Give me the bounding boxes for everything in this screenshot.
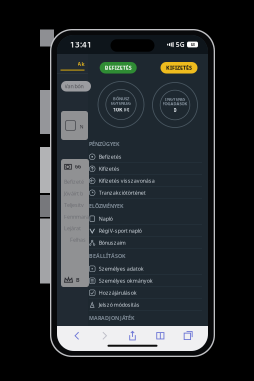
button[interactable]: BEFIZETÉS xyxy=(100,62,137,73)
button[interactable]: Jelszó módosítás xyxy=(89,299,202,311)
button[interactable]: Hozzájárulások xyxy=(89,287,202,299)
staticText: KIFIZETÉS xyxy=(166,64,192,71)
staticText: Fennmara xyxy=(64,213,89,220)
staticText: B xyxy=(76,276,80,284)
staticText: Tranzakciótörténet xyxy=(99,189,146,196)
staticText: Befizeté xyxy=(64,178,84,185)
staticText: ELŐZMÉNYEK xyxy=(89,202,123,210)
staticText: PÉNZÜGYEK xyxy=(89,140,119,148)
button[interactable]: Bónuszaim xyxy=(89,237,202,249)
staticText: Jóváírt b xyxy=(64,190,83,197)
staticText: 0 xyxy=(173,106,176,114)
staticText: Jelszó módosítás xyxy=(99,301,140,308)
staticText: 10K Ft xyxy=(113,106,129,113)
staticText: 5G xyxy=(176,40,185,49)
staticText: Ak xyxy=(78,60,85,68)
staticText: Felhas xyxy=(70,236,86,243)
staticText: BÓNUSZ xyxy=(113,96,129,101)
button[interactable]: Személyes okmányok xyxy=(89,275,202,287)
staticText: Lejárat xyxy=(64,225,81,232)
staticText: MARADJON JÁTÉK xyxy=(89,314,134,322)
button[interactable]: Back xyxy=(69,328,85,344)
button[interactable]: Forward xyxy=(97,328,113,344)
button[interactable]: Régi V-sport napló xyxy=(89,225,202,237)
staticText: FOGADÁSOK xyxy=(162,101,187,106)
staticText: Befizetés xyxy=(99,153,122,160)
staticText: Régi V-sport napló xyxy=(99,227,142,234)
button[interactable]: Befizetés xyxy=(89,151,202,163)
button[interactable]: Kifizetés xyxy=(89,163,202,175)
staticText: Személyes adatok xyxy=(99,265,144,272)
button[interactable]: Személyes adatok xyxy=(89,263,202,275)
staticText: BEFIZETÉS xyxy=(105,64,132,71)
button[interactable]: Tranzakciótörténet xyxy=(89,187,202,199)
button[interactable]: Kifizetés visszavonása xyxy=(89,175,202,187)
staticText: Hozzájárulások xyxy=(99,289,137,296)
staticText: Kifizetés visszavonása xyxy=(99,177,155,184)
staticText: EGYENLEG xyxy=(111,100,131,106)
staticText: Személyes okmányok xyxy=(99,277,153,284)
staticText: 63 xyxy=(190,42,194,47)
staticText: 13:41 xyxy=(70,39,92,50)
button[interactable]: Napló xyxy=(89,213,202,225)
staticText: N xyxy=(79,123,83,130)
staticText: BEÁLLÍTÁSOK xyxy=(89,252,125,260)
staticText: Teljesítv xyxy=(64,201,84,209)
button[interactable]: Bookmarks xyxy=(152,328,168,344)
staticText: INGYENES xyxy=(165,96,185,102)
button[interactable]: Tabs xyxy=(180,328,196,344)
staticText: Bónuszaim xyxy=(99,239,126,246)
staticText: Van bón xyxy=(64,83,83,90)
button[interactable]: Ak xyxy=(57,54,88,98)
staticText: Kifizetés xyxy=(99,165,120,172)
staticText: Napló xyxy=(99,215,113,222)
button[interactable]: KIFIZETÉS xyxy=(160,62,197,73)
staticText: 66 xyxy=(75,163,81,170)
button[interactable]: Share xyxy=(124,328,140,344)
